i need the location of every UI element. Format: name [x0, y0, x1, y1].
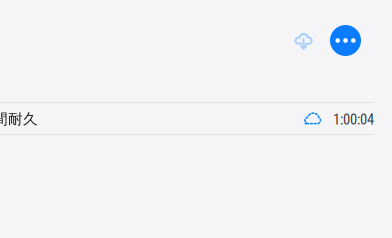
button[interactable]: Download from iCloud — [294, 32, 314, 52]
staticText: 間耐久 — [0, 110, 38, 128]
button[interactable]: 間耐久 — [0, 103, 374, 134]
staticText: 1:00:04 — [333, 111, 374, 128]
button[interactable]: More — [330, 25, 361, 56]
